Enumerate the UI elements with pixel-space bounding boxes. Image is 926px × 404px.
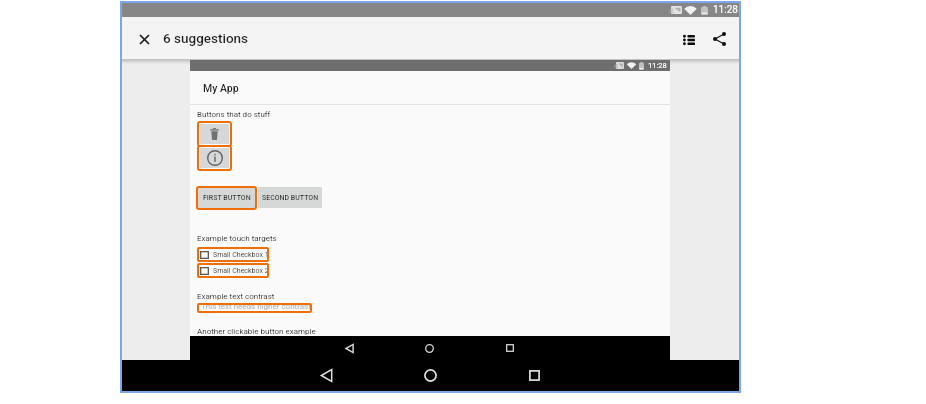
button[interactable]: This text needs higher contrast [197,303,312,313]
staticText: Buttons that do stuff [197,110,271,119]
button[interactable]: Info [200,148,229,168]
staticText: Example touch targets [197,234,277,243]
button[interactable]: Share [707,27,731,51]
button[interactable]: Close [132,27,156,51]
staticText: Another clickable button example [197,327,316,336]
staticText: Example text contrast [197,292,275,301]
staticText: 11:28 [713,4,738,16]
staticText: My App [203,82,239,94]
button[interactable]: Back [306,360,346,391]
staticText: This text needs higher contrast [201,303,311,311]
button[interactable]: SECOND BUTTON [258,187,322,208]
button[interactable]: Small Checkbox 2 [197,263,269,278]
staticText: 6 suggestions [163,30,249,46]
button[interactable]: Recents [514,360,554,391]
staticText: SECOND BUTTON [262,194,319,202]
button[interactable]: Small Checkbox 1 [197,247,269,262]
button[interactable]: FIRST BUTTON [198,188,255,208]
staticText: 11:28 [648,61,667,70]
button[interactable]: Delete [200,124,229,144]
staticText: Small Checkbox 2 [213,267,269,275]
staticText: Small Checkbox 1 [213,251,269,259]
button[interactable]: Home [410,360,450,391]
staticText: FIRST BUTTON [203,194,251,202]
button[interactable]: List view [677,28,701,52]
